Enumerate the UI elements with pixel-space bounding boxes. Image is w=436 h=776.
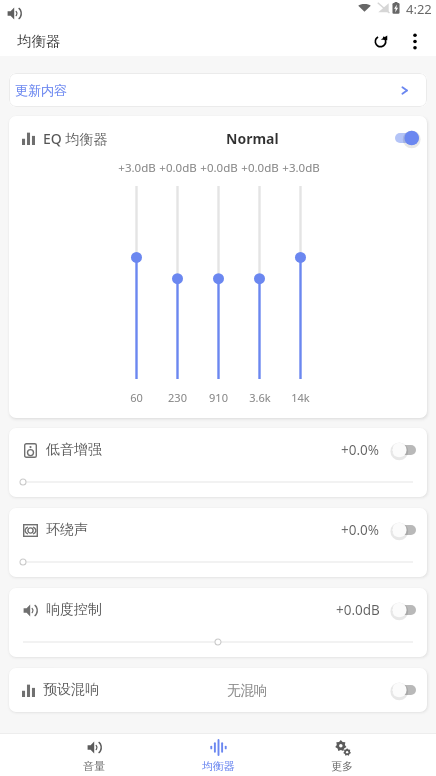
button[interactable]: Refresh — [360, 26, 400, 56]
button[interactable]: Turn off — [391, 127, 423, 149]
button[interactable]: More options — [400, 26, 430, 56]
staticText: +0.0% — [341, 521, 380, 539]
button[interactable]: 响度控制 — [9, 588, 427, 657]
button[interactable]: 预设混响 — [9, 668, 427, 712]
staticText: 14k — [291, 390, 310, 405]
staticText: +0.0dB — [336, 601, 380, 619]
button[interactable]: Turn on — [388, 599, 420, 621]
button[interactable]: 环绕声 — [9, 508, 427, 577]
staticText: 4:22 — [406, 0, 432, 18]
staticText: 预设混响 — [43, 681, 99, 699]
staticText: Normal — [226, 129, 279, 148]
staticText: +0.0dB — [241, 160, 279, 176]
staticText: 910 — [209, 390, 228, 405]
staticText: 音量 — [83, 759, 105, 773]
staticText: 更多 — [331, 759, 353, 773]
staticText: +0.0% — [341, 441, 380, 459]
staticText: 3.6k — [249, 390, 271, 405]
staticText: 均衡器 — [17, 32, 61, 50]
button[interactable]: Turn on — [388, 679, 420, 701]
button[interactable]: Turn on — [388, 519, 420, 541]
staticText: 更新内容 — [15, 82, 67, 98]
button[interactable]: 低音增强 — [9, 428, 427, 497]
button[interactable]: 均衡器 — [156, 734, 280, 776]
button[interactable]: 更多 — [280, 734, 404, 776]
staticText: 230 — [168, 390, 187, 405]
button[interactable]: 音量 — [32, 734, 156, 776]
staticText: 无混响 — [227, 682, 268, 699]
staticText: 低音增强 — [46, 441, 102, 459]
staticText: +0.0dB — [159, 160, 197, 176]
button[interactable]: Turn on — [388, 439, 420, 461]
staticText: +3.0dB — [118, 160, 156, 176]
button[interactable]: 更新内容 — [9, 73, 427, 107]
staticText: 响度控制 — [46, 601, 102, 619]
staticText: +3.0dB — [282, 160, 320, 176]
staticText: +0.0dB — [200, 160, 238, 176]
staticText: 均衡器 — [202, 759, 235, 773]
staticText: 60 — [130, 390, 143, 405]
staticText: 环绕声 — [46, 521, 88, 539]
staticText: EQ 均衡器 — [43, 129, 108, 148]
